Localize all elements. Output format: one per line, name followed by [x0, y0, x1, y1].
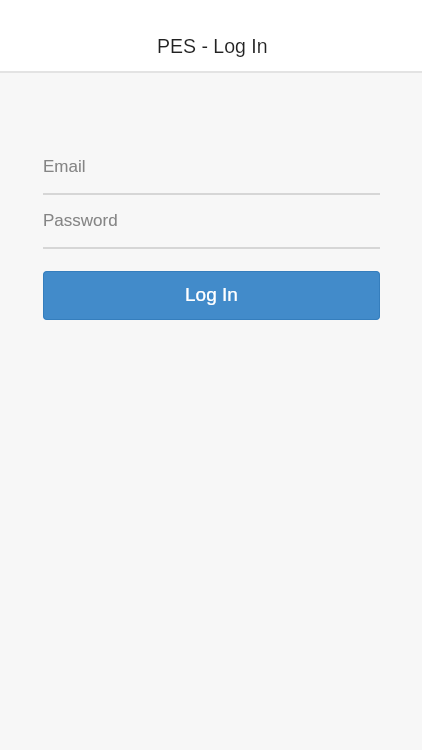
staticText: Log In: [185, 284, 238, 305]
staticText: PES - Log In: [157, 35, 268, 57]
button[interactable]: Password: [43, 206, 380, 249]
staticText: Email: [43, 157, 86, 176]
button[interactable]: Email: [43, 152, 380, 195]
staticText: Password: [43, 211, 118, 230]
button[interactable]: Log In: [43, 271, 380, 320]
